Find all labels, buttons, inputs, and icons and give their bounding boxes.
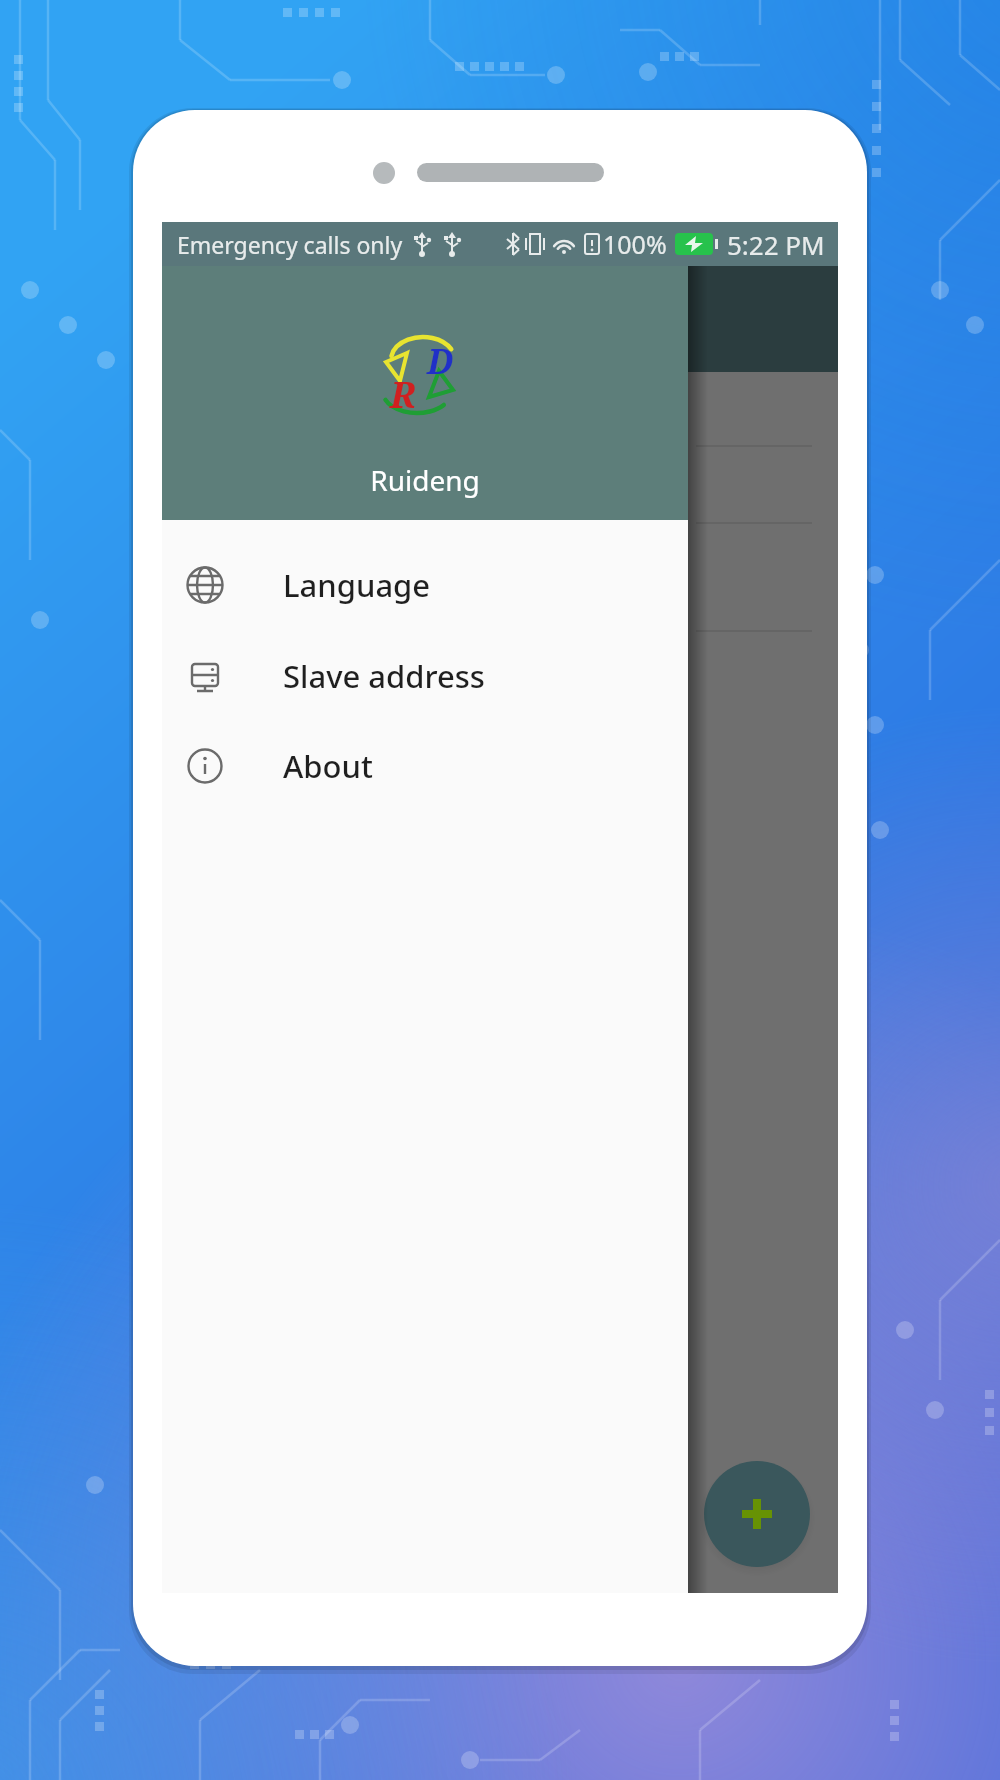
staticText: 5:22 PM (727, 227, 825, 262)
button[interactable]: Language (162, 549, 688, 621)
staticText: Ruideng (162, 461, 688, 499)
staticText: About (283, 745, 373, 787)
button[interactable]: About (162, 730, 688, 802)
button[interactable]: Slave address (162, 640, 688, 712)
button[interactable] (704, 1461, 810, 1567)
staticText: Emergency calls only (177, 229, 403, 260)
staticText: R (390, 370, 416, 419)
staticText: 100% (603, 227, 667, 261)
staticText: Language (283, 564, 431, 606)
staticText: D (427, 338, 454, 384)
staticText: Slave address (283, 655, 485, 697)
